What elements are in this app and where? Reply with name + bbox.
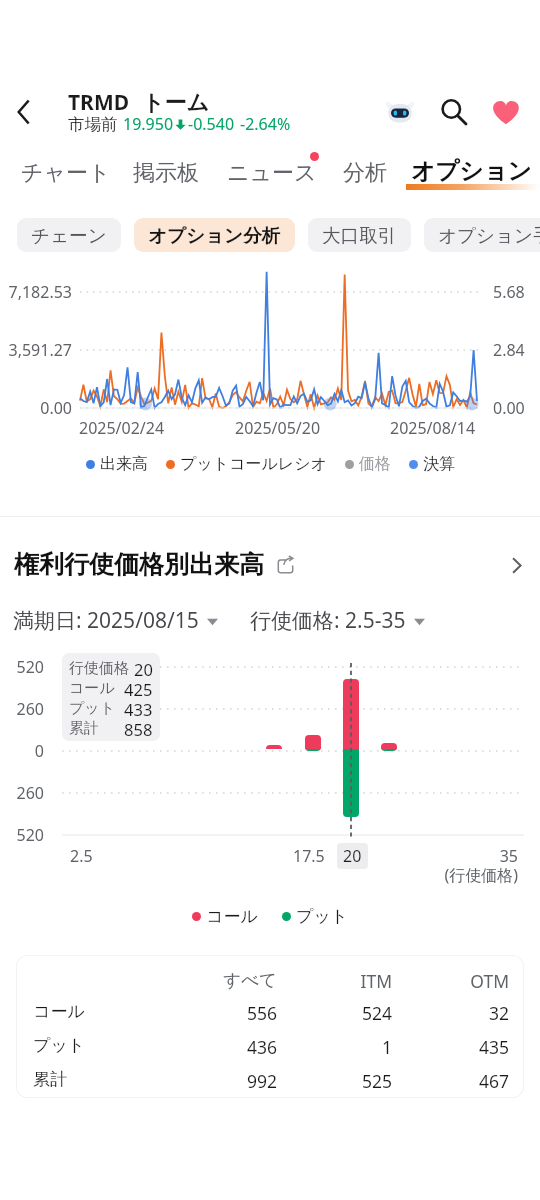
staticText: -2.64%	[240, 113, 291, 135]
staticText: 17.5	[293, 845, 325, 867]
staticText: 決算	[423, 454, 455, 474]
staticText: ニュース	[227, 159, 317, 187]
staticText: 行使価格	[69, 659, 129, 678]
staticText: 20	[134, 658, 153, 678]
staticText: 525	[16, 1069, 392, 1090]
button[interactable]: AI assistant	[380, 92, 420, 132]
staticText: プット	[33, 1035, 86, 1056]
button[interactable]: 満期日: 2025/08/15	[13, 606, 218, 635]
staticText: 0.00	[0, 397, 72, 419]
staticText: 520	[0, 824, 44, 846]
staticText: 2025/08/14	[390, 417, 476, 439]
button[interactable]: 行使価格: 2.5-35	[250, 606, 425, 635]
button[interactable]: 分析	[343, 159, 387, 187]
staticText: 524	[16, 1001, 392, 1022]
staticText: (行使価格)	[0, 864, 518, 886]
staticText: トーム	[142, 89, 210, 117]
button[interactable]: 価格	[345, 452, 391, 476]
button[interactable]: オプション分析	[134, 218, 295, 252]
staticText: チェーン	[31, 224, 107, 247]
staticText: 累計	[69, 719, 99, 738]
staticText: プットコールレシオ	[180, 454, 327, 474]
staticText: 260	[0, 782, 44, 804]
button[interactable]: 出来高	[86, 452, 148, 476]
staticText: 2025/02/24	[79, 417, 165, 439]
staticText: 価格	[359, 454, 391, 474]
button[interactable]: プット	[282, 904, 349, 929]
button[interactable]: チェーン	[17, 218, 121, 252]
button[interactable]: オプション	[411, 156, 532, 186]
button[interactable]: ニュース	[227, 159, 317, 187]
staticText: 32	[16, 1001, 509, 1022]
staticText: コール	[69, 679, 115, 698]
staticText: 0	[0, 740, 44, 762]
staticText: ITM	[16, 969, 392, 990]
staticText: 大口取引	[322, 224, 397, 247]
staticText: 掲示板	[133, 159, 199, 187]
button[interactable]: Back	[2, 90, 46, 134]
button[interactable]: 大口取引	[308, 218, 411, 252]
staticText: 5.68	[493, 281, 537, 303]
button[interactable]: See all	[499, 547, 535, 583]
staticText: 992	[16, 1069, 277, 1090]
staticText: オプション	[411, 156, 532, 186]
staticText: 0.00	[493, 397, 537, 419]
staticText: プット	[69, 699, 116, 718]
button[interactable]: チャート	[21, 159, 111, 187]
staticText: オプション手数料	[438, 224, 540, 247]
staticText: 分析	[343, 159, 387, 187]
staticText: 満期日: 2025/08/15	[13, 606, 199, 635]
staticText: -0.540	[188, 113, 235, 135]
staticText: 35	[0, 845, 518, 867]
staticText: OTM	[16, 969, 509, 990]
button[interactable]: Favorite	[486, 92, 526, 132]
button[interactable]: コール	[192, 904, 258, 929]
staticText: 556	[16, 1001, 277, 1022]
staticText: 425	[124, 678, 153, 698]
staticText: TRMD	[68, 88, 130, 117]
button[interactable]: プットコールレシオ	[166, 452, 327, 476]
button[interactable]: Search	[434, 92, 474, 132]
staticText: 467	[16, 1069, 509, 1090]
staticText: 行使価格: 2.5-35	[250, 606, 406, 635]
staticText: 520	[0, 656, 44, 678]
staticText: 3,591.27	[0, 339, 72, 361]
staticText: 858	[124, 718, 153, 738]
staticText: 260	[0, 698, 44, 720]
staticText: オプション分析	[148, 224, 281, 247]
button[interactable]: オプション手数料	[424, 218, 540, 252]
staticText: 433	[124, 698, 153, 718]
staticText: 436	[16, 1035, 277, 1056]
staticText: 2025/05/20	[235, 417, 321, 439]
button[interactable]: 掲示板	[133, 159, 199, 187]
staticText: 累計	[33, 1069, 67, 1090]
staticText: 1	[16, 1035, 392, 1056]
staticText: 19.950	[123, 113, 174, 135]
staticText: 権利行使価格別出来高	[14, 549, 264, 580]
staticText: 市場前	[68, 114, 118, 135]
staticText: すべて	[16, 969, 277, 990]
staticText: 2.84	[493, 339, 537, 361]
staticText: 出来高	[100, 454, 148, 474]
staticText: 20	[343, 845, 362, 867]
staticText: コール	[206, 906, 258, 927]
staticText: 7,182.53	[0, 281, 72, 303]
staticText: コール	[33, 1001, 85, 1022]
button[interactable]: 決算	[409, 452, 455, 476]
staticText: 2.5	[70, 845, 93, 867]
staticText: チャート	[21, 159, 111, 187]
staticText: プット	[296, 906, 349, 927]
staticText: 435	[16, 1035, 509, 1056]
